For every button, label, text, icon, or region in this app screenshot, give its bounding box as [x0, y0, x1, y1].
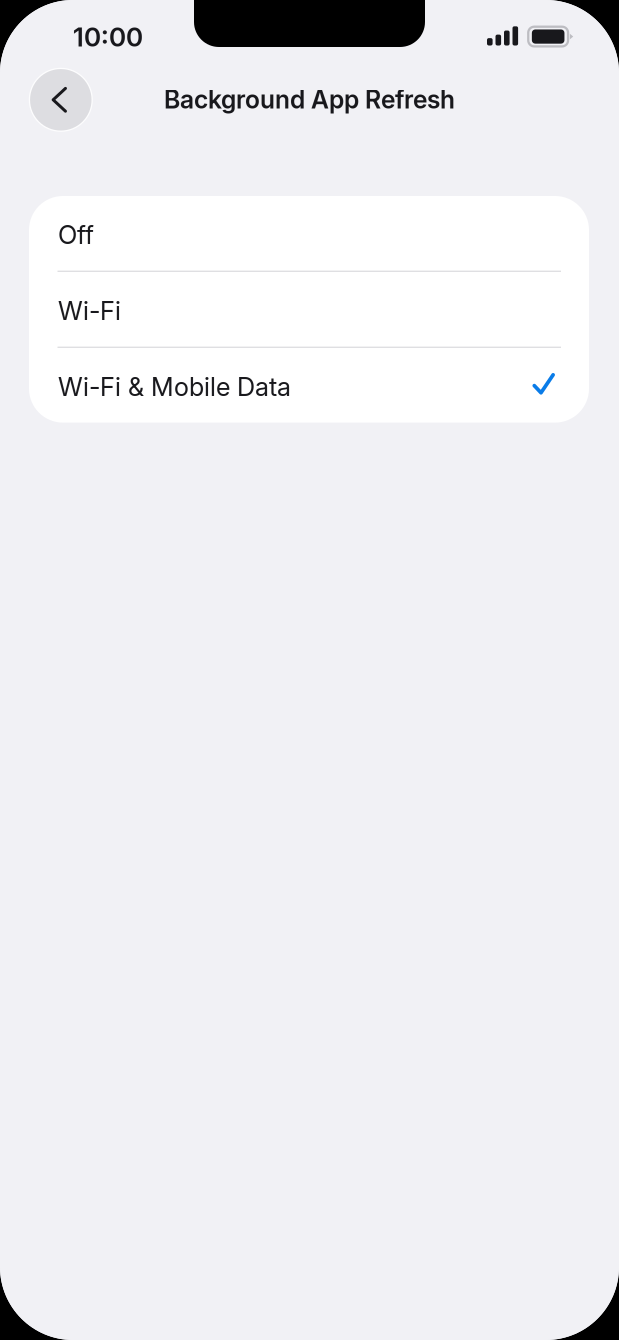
button[interactable]: Back	[29, 68, 93, 132]
staticText: Off	[58, 219, 94, 250]
staticText: 10:00	[73, 21, 143, 53]
staticText: Wi-Fi & Mobile Data	[58, 371, 291, 402]
button[interactable]: Wi-Fi	[29, 272, 589, 347]
staticText: Wi-Fi	[58, 295, 121, 326]
button[interactable]: Off	[29, 196, 589, 271]
staticText: Background App Refresh	[164, 84, 455, 114]
button[interactable]: Wi-Fi & Mobile Data	[29, 348, 589, 423]
